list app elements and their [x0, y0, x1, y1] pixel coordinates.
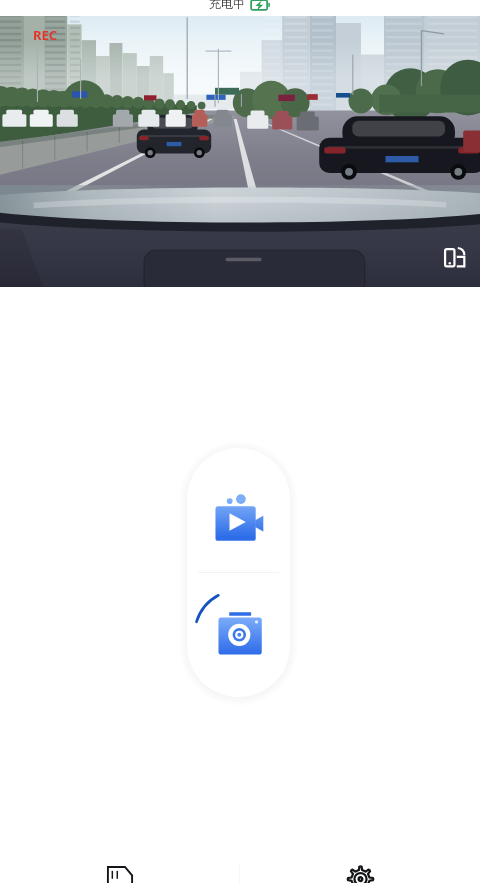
button[interactable]: Settings: [240, 838, 480, 883]
button[interactable]: Take photo: [187, 573, 290, 697]
button[interactable]: Record video: [187, 448, 290, 572]
staticText: REC: [33, 26, 58, 44]
button[interactable]: Cast to screen: [443, 245, 469, 271]
button[interactable]: Storage: [0, 838, 239, 883]
staticText: 充电中: [209, 0, 245, 11]
